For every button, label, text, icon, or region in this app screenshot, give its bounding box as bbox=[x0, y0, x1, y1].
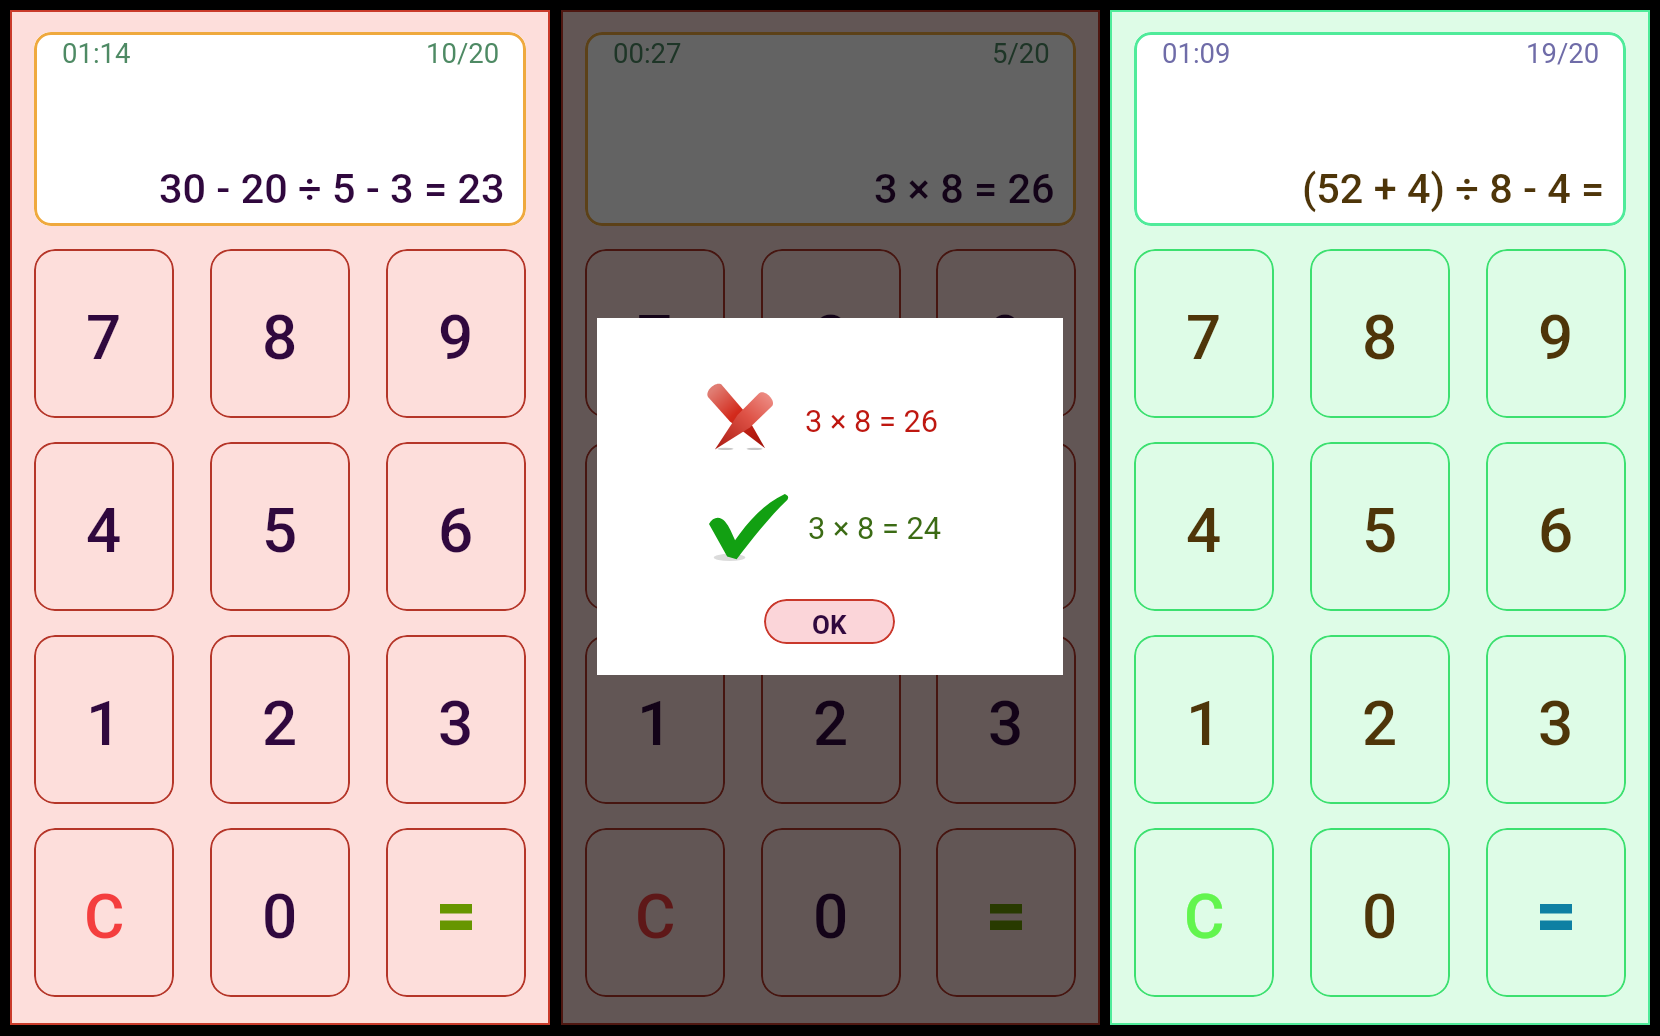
staticText: 10/20 bbox=[426, 37, 500, 69]
staticText: 8 bbox=[813, 301, 849, 374]
staticText: 19/20 bbox=[1526, 37, 1600, 69]
staticText: 5 bbox=[1362, 494, 1398, 567]
button[interactable]: 1 bbox=[34, 635, 174, 804]
staticText: (52 + 4) ÷ 8 - 4 = bbox=[1302, 165, 1605, 214]
staticText: 0 bbox=[1362, 880, 1398, 953]
staticText: 8 bbox=[1362, 301, 1398, 374]
staticText: 3 × 8 = 26 bbox=[805, 403, 939, 439]
staticText: 8 bbox=[262, 301, 298, 374]
button[interactable]: 8 bbox=[210, 249, 350, 418]
staticText: 3 × 8 = 26 bbox=[874, 165, 1055, 214]
button[interactable]: Clear bbox=[1134, 828, 1274, 997]
staticText: 4 bbox=[86, 494, 122, 567]
button[interactable]: 4 bbox=[1134, 442, 1274, 611]
button[interactable]: 2 bbox=[1310, 635, 1450, 804]
staticText: 9 bbox=[988, 301, 1024, 374]
staticText: 4 bbox=[1186, 494, 1222, 567]
button[interactable]: Equals bbox=[936, 828, 1076, 997]
button[interactable]: 1 bbox=[585, 635, 725, 804]
button[interactable]: 2 bbox=[761, 635, 901, 804]
button[interactable]: 6 bbox=[386, 442, 526, 611]
staticText: 5 bbox=[262, 494, 298, 567]
button[interactable]: 3 bbox=[386, 635, 526, 804]
staticText: 5/20 bbox=[992, 37, 1050, 69]
staticText: 01:09 bbox=[1162, 37, 1231, 69]
staticText: C bbox=[1184, 880, 1225, 953]
button[interactable]: 6 bbox=[1486, 442, 1626, 611]
button[interactable]: Equals bbox=[1486, 828, 1626, 997]
button[interactable]: 8 bbox=[761, 249, 901, 418]
staticText: 01:14 bbox=[62, 37, 131, 69]
staticText: 0 bbox=[813, 880, 849, 953]
staticText: 9 bbox=[1538, 301, 1574, 374]
button[interactable]: 7 bbox=[585, 249, 725, 418]
staticText: C bbox=[635, 880, 676, 953]
staticText: 1 bbox=[637, 687, 673, 760]
button[interactable]: Clear bbox=[34, 828, 174, 997]
button[interactable]: 7 bbox=[1134, 249, 1274, 418]
button[interactable]: 0 bbox=[210, 828, 350, 997]
staticText: 9 bbox=[438, 301, 474, 374]
button[interactable]: 7 bbox=[34, 249, 174, 418]
button[interactable]: Clear bbox=[585, 828, 725, 997]
button[interactable]: 0 bbox=[1310, 828, 1450, 997]
button[interactable]: 9 bbox=[386, 249, 526, 418]
staticText: OK bbox=[812, 610, 847, 640]
staticText: 1 bbox=[1186, 687, 1222, 760]
button[interactable]: 9 bbox=[936, 249, 1076, 418]
staticText: 6 bbox=[438, 494, 474, 567]
staticText: 3 bbox=[438, 687, 474, 760]
button[interactable]: 5 bbox=[1310, 442, 1450, 611]
staticText: 0 bbox=[262, 880, 298, 953]
button[interactable]: 4 bbox=[34, 442, 174, 611]
staticText: 7 bbox=[1186, 301, 1222, 374]
button[interactable]: 3 bbox=[1486, 635, 1626, 804]
button[interactable]: 6 bbox=[936, 442, 1076, 611]
button[interactable]: 5 bbox=[210, 442, 350, 611]
button[interactable]: 1 bbox=[1134, 635, 1274, 804]
button[interactable]: 9 bbox=[1486, 249, 1626, 418]
staticText: 30 - 20 ÷ 5 - 3 = 23 bbox=[159, 165, 505, 214]
staticText: 2 bbox=[813, 687, 849, 760]
button[interactable]: 3 bbox=[936, 635, 1076, 804]
button[interactable]: 5 bbox=[761, 442, 901, 611]
staticText: 3 × 8 = 24 bbox=[808, 510, 942, 546]
staticText: 00:27 bbox=[613, 37, 682, 69]
staticText: 2 bbox=[1362, 687, 1398, 760]
staticText: 3 bbox=[988, 687, 1024, 760]
button[interactable]: Equals bbox=[386, 828, 526, 997]
staticText: 5 bbox=[813, 494, 849, 567]
staticText: 6 bbox=[1538, 494, 1574, 567]
button[interactable]: 0 bbox=[761, 828, 901, 997]
button[interactable]: 2 bbox=[210, 635, 350, 804]
staticText: 2 bbox=[262, 687, 298, 760]
staticText: C bbox=[84, 880, 125, 953]
button[interactable]: OK bbox=[764, 599, 895, 644]
button[interactable]: 8 bbox=[1310, 249, 1450, 418]
staticText: 7 bbox=[637, 301, 673, 374]
staticText: 3 bbox=[1538, 687, 1574, 760]
button[interactable]: 4 bbox=[585, 442, 725, 611]
staticText: 1 bbox=[86, 687, 122, 760]
staticText: 7 bbox=[86, 301, 122, 374]
